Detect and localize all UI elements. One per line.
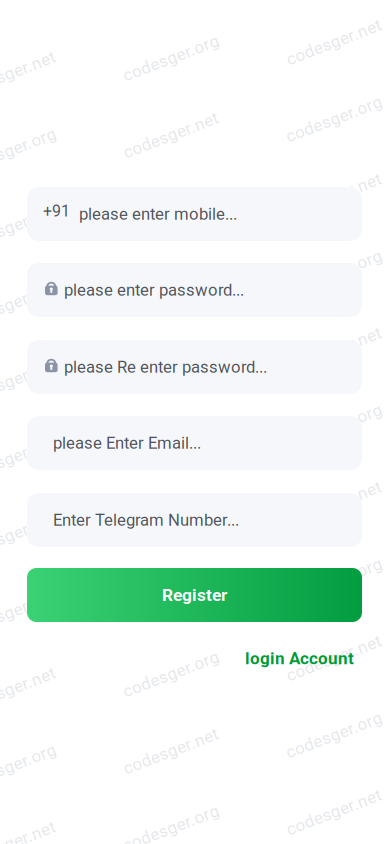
staticText: codesger.net xyxy=(0,834,58,844)
staticText: codesger.org xyxy=(0,449,59,469)
staticText: codesger.org xyxy=(0,295,59,315)
button[interactable]: +91 xyxy=(27,187,362,241)
staticText: codesger.net xyxy=(283,340,384,360)
staticText: codesger.net xyxy=(120,279,221,299)
staticText: login Account xyxy=(245,648,354,668)
staticText: please enter mobile... xyxy=(79,204,237,224)
staticText: Enter Telegram Number... xyxy=(53,510,239,530)
staticText: codesger.net xyxy=(0,64,58,84)
staticText: codesger.org xyxy=(0,603,59,623)
staticText: codesger.org xyxy=(120,818,222,838)
staticText: codesger.net xyxy=(120,433,221,453)
staticText: codesger.net xyxy=(120,587,221,607)
staticText: codesger.net xyxy=(283,494,384,514)
staticText: please enter password... xyxy=(64,280,244,300)
staticText: codesger.net xyxy=(0,680,58,700)
button[interactable]: please Enter Email... xyxy=(27,416,362,470)
button[interactable]: Enter Telegram Number... xyxy=(27,493,362,547)
staticText: codesger.org xyxy=(283,109,385,129)
staticText: codesger.net xyxy=(120,125,221,145)
staticText: please Re enter password... xyxy=(64,357,267,377)
staticText: codesger.net xyxy=(283,648,384,668)
staticText: codesger.org xyxy=(120,202,222,222)
button[interactable]: please Re enter password... xyxy=(27,340,362,394)
button[interactable]: login Account xyxy=(241,644,358,672)
button[interactable]: please enter password... xyxy=(27,263,362,317)
button[interactable]: Register xyxy=(27,568,362,622)
staticText: codesger.net xyxy=(0,526,58,546)
staticText: codesger.net xyxy=(0,372,58,392)
staticText: codesger.org xyxy=(0,757,59,777)
staticText: codesger.net xyxy=(0,218,58,238)
staticText: codesger.net xyxy=(283,32,384,52)
staticText: codesger.org xyxy=(283,571,385,591)
staticText: +91 xyxy=(43,202,70,220)
staticText: codesger.net xyxy=(283,186,384,206)
staticText: codesger.net xyxy=(283,802,384,822)
staticText: codesger.org xyxy=(120,48,222,68)
staticText: codesger.org xyxy=(283,725,385,745)
staticText: codesger.net xyxy=(120,741,221,761)
staticText: codesger.org xyxy=(120,510,222,530)
staticText: codesger.org xyxy=(283,263,385,283)
staticText: Register xyxy=(162,585,227,605)
staticText: codesger.org xyxy=(120,356,222,376)
staticText: codesger.org xyxy=(120,664,222,684)
staticText: codesger.org xyxy=(0,141,59,161)
staticText: please Enter Email... xyxy=(53,433,201,453)
staticText: codesger.org xyxy=(283,417,385,437)
